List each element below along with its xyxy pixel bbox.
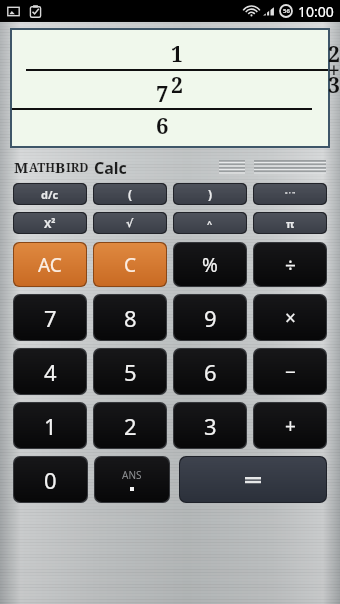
button[interactable]: × xyxy=(254,295,326,340)
staticText: 6 xyxy=(156,110,169,140)
button[interactable]: 2 xyxy=(94,403,166,448)
staticText: d/c xyxy=(41,187,59,202)
staticText: 7 xyxy=(156,78,169,108)
staticText: 10:00 xyxy=(298,2,334,21)
staticText: π xyxy=(286,216,295,231)
button[interactable]: X² xyxy=(14,213,86,233)
button[interactable]: 6 xyxy=(174,349,246,394)
staticText: × xyxy=(285,305,296,331)
staticText: B xyxy=(55,157,66,177)
staticText: ^ xyxy=(207,217,213,229)
button[interactable]: C xyxy=(94,243,166,286)
staticText: IRD xyxy=(66,159,89,175)
button[interactable]: π xyxy=(254,213,326,233)
staticText: ATH xyxy=(29,159,55,175)
staticText: 5 xyxy=(124,357,137,387)
button[interactable]: 4 xyxy=(14,349,86,394)
button[interactable]: − xyxy=(254,349,326,394)
button[interactable]: d/c xyxy=(14,184,86,204)
button[interactable]: % xyxy=(174,243,246,286)
button[interactable]: 7 xyxy=(14,295,86,340)
button[interactable]: 3 xyxy=(174,403,246,448)
button[interactable]: AC xyxy=(14,243,86,286)
staticText: 4 xyxy=(44,357,57,387)
staticText: 2 xyxy=(171,71,183,100)
button[interactable]: ANS decimal point xyxy=(95,457,169,502)
button[interactable]: 9 xyxy=(174,295,246,340)
staticText: + xyxy=(285,413,296,439)
staticText: ) xyxy=(208,186,213,202)
staticText: 7 xyxy=(44,303,57,333)
staticText: 3 xyxy=(204,411,217,441)
button[interactable]: 5 xyxy=(94,349,166,394)
button[interactable]: equals xyxy=(180,457,326,502)
button[interactable]: 0 xyxy=(14,457,87,502)
staticText: 9 xyxy=(204,303,217,333)
staticText: 0 xyxy=(44,465,57,495)
staticText: ( xyxy=(128,186,133,202)
staticText: Calc xyxy=(94,157,127,177)
staticText: X² xyxy=(44,216,56,231)
staticText: 6 xyxy=(204,357,217,387)
staticText: 1 xyxy=(171,40,183,69)
staticText: ° ' " xyxy=(285,190,296,198)
staticText: 2 xyxy=(124,411,137,441)
button[interactable]: + xyxy=(254,403,326,448)
staticText: ÷ xyxy=(285,252,296,278)
staticText: AC xyxy=(38,252,62,278)
button[interactable]: ÷ xyxy=(254,243,326,286)
button[interactable]: ° ' " xyxy=(254,184,326,204)
staticText: 56 xyxy=(283,7,290,15)
button[interactable]: 8 xyxy=(94,295,166,340)
staticText: √ xyxy=(126,217,134,230)
button[interactable]: ^ xyxy=(174,213,246,233)
button[interactable]: 1 xyxy=(14,403,86,448)
staticText: 1 xyxy=(44,411,57,441)
staticText: ANS xyxy=(122,468,142,482)
staticText: 8 xyxy=(124,303,137,333)
button[interactable]: ( xyxy=(94,184,166,204)
staticText: % xyxy=(202,252,218,278)
staticText: − xyxy=(285,359,296,385)
button[interactable]: ) xyxy=(174,184,246,204)
staticText: C xyxy=(124,252,137,278)
button[interactable]: √ xyxy=(94,213,166,233)
staticText: M xyxy=(14,157,29,177)
